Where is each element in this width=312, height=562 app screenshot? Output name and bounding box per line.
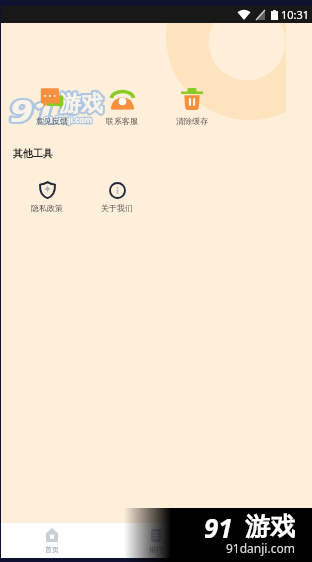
staticText: 91danji.com	[44, 114, 93, 125]
staticText: 其他工具	[13, 147, 53, 160]
button[interactable]: 首页	[0, 523, 104, 558]
staticText: 91	[10, 90, 56, 131]
staticText: 首页	[45, 545, 59, 554]
staticText: 联系客服	[106, 116, 138, 126]
button[interactable]: 联系客服	[87, 88, 157, 126]
button[interactable]: 意见反馈	[17, 88, 87, 126]
staticText: 91	[204, 510, 233, 545]
staticText: 游戏	[245, 511, 295, 542]
staticText: 清除缓存	[176, 116, 208, 126]
button[interactable]: 隐私政策	[12, 179, 82, 213]
staticText: 游戏	[59, 90, 103, 118]
staticText: 91danji.com	[226, 540, 295, 556]
staticText: 排行	[149, 545, 163, 554]
staticText: 关于我们	[101, 203, 133, 213]
staticText: 意见反馈	[36, 116, 68, 126]
staticText: 91danji.com	[44, 114, 93, 125]
staticText: 游戏	[59, 90, 103, 118]
staticText: 91	[10, 90, 56, 131]
staticText: 我的	[253, 545, 267, 554]
staticText: 91	[204, 510, 233, 545]
button[interactable]: 排行	[104, 523, 208, 558]
button[interactable]: 清除缓存	[157, 88, 227, 126]
staticText: 隐私政策	[31, 203, 63, 213]
button[interactable]: 关于我们	[82, 179, 152, 213]
button[interactable]: 我的	[208, 523, 312, 558]
staticText: 10:31	[281, 7, 310, 22]
